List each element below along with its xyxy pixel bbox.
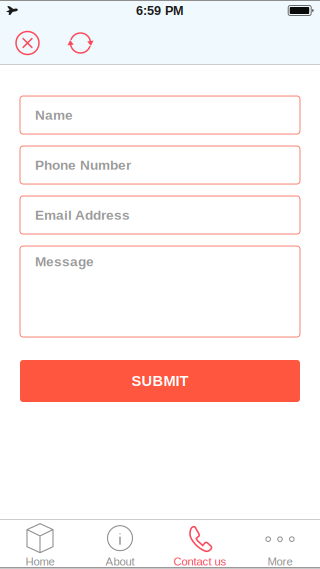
staticText: Name [35,107,73,123]
staticText: Home [25,555,54,568]
staticText: Phone Number [35,157,131,173]
button[interactable]: Name [20,96,300,134]
staticText: More [267,555,292,568]
button[interactable]: Phone Number [20,146,300,184]
button[interactable]: Refresh [58,21,102,65]
button[interactable]: Home [0,520,80,569]
button[interactable]: Message [20,246,300,337]
button[interactable]: Email Address [20,196,300,234]
button[interactable]: Close [5,21,49,65]
button[interactable]: About [80,520,160,569]
staticText: 6:59 PM [136,3,184,18]
button[interactable]: More [240,520,320,569]
staticText: Email Address [35,207,130,223]
button[interactable]: Contact us [160,520,240,569]
staticText: About [105,555,134,568]
staticText: Contact us [173,555,226,568]
staticText: SUBMIT [131,373,188,389]
staticText: Message [35,254,94,269]
button[interactable]: SUBMIT [20,360,300,402]
